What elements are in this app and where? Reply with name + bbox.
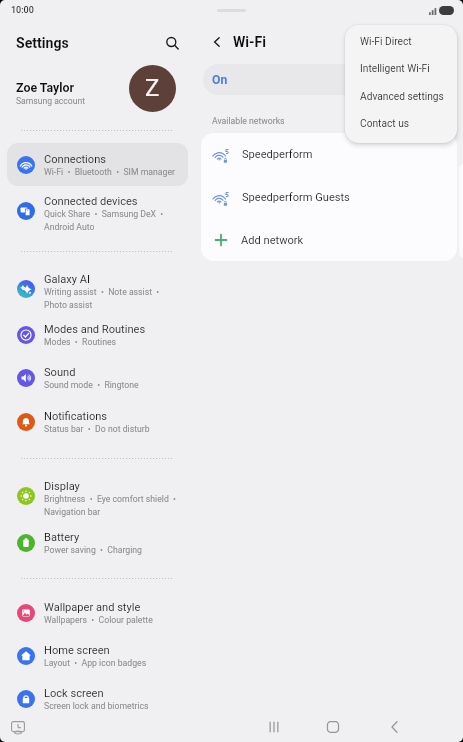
button[interactable]: Notifications — [7, 400, 188, 443]
staticText: Wi-Fi Direct — [360, 36, 412, 48]
staticText: Intelligent Wi-Fi — [360, 63, 430, 75]
button[interactable]: Intelligent Wi-Fi — [345, 55, 457, 82]
button[interactable]: Back — [388, 721, 400, 733]
button[interactable]: Home — [327, 721, 339, 733]
button[interactable]: Add network — [201, 219, 457, 261]
staticText: Wallpaper and style — [44, 601, 141, 614]
button[interactable]: On — [203, 64, 457, 95]
staticText: Display — [44, 480, 80, 493]
button[interactable]: Display — [7, 471, 188, 521]
staticText: Power saving • Charging — [44, 545, 143, 555]
button[interactable]: Wallpaper and style — [7, 591, 188, 634]
staticText: Wi-Fi • Bluetooth • SIM manager — [44, 167, 176, 177]
staticText: On — [212, 73, 228, 87]
staticText: Zoe Taylor — [16, 80, 75, 95]
button[interactable]: Galaxy AI — [7, 264, 188, 314]
staticText: Settings — [16, 35, 69, 52]
button[interactable]: Search — [160, 31, 184, 55]
staticText: Modes • Routines — [44, 337, 117, 347]
staticText: Available networks — [212, 116, 285, 126]
staticText: Quick Share • Samsung DeX • Android Auto — [44, 209, 164, 232]
staticText: Screen lock and biometrics — [44, 701, 149, 711]
button[interactable]: Connections — [7, 143, 188, 186]
button[interactable]: Contact us — [345, 110, 457, 137]
staticText: Status bar • Do not disturb — [44, 424, 150, 434]
button[interactable]: Advanced settings — [345, 83, 457, 110]
button[interactable]: Modes and Routines — [7, 313, 188, 356]
button[interactable]: Back — [206, 31, 228, 53]
staticText: Notifications — [44, 410, 108, 423]
button[interactable]: Connected devices — [7, 186, 188, 236]
staticText: Battery — [44, 531, 80, 544]
button[interactable]: Digital wellbeing — [7, 716, 29, 738]
staticText: Sound — [44, 366, 76, 379]
button[interactable]: Recent apps — [268, 721, 280, 733]
staticText: Add network — [241, 234, 304, 247]
staticText: Home screen — [44, 644, 110, 657]
staticText: Brightness • Eye comfort shield • Naviga… — [44, 494, 177, 517]
staticText: Advanced settings — [360, 91, 444, 103]
staticText: Z — [145, 74, 160, 102]
staticText: 10:00 — [11, 5, 34, 16]
button[interactable]: Zoe Taylor — [0, 62, 190, 114]
button[interactable]: Lock screen — [7, 677, 188, 720]
staticText: Connected devices — [44, 195, 138, 208]
button[interactable]: Battery — [7, 521, 188, 564]
staticText: Connections — [44, 153, 106, 166]
staticText: Speedperform — [242, 148, 313, 161]
staticText: Samsung account — [16, 96, 86, 106]
button[interactable]: Home screen — [7, 634, 188, 677]
staticText: Wi-Fi — [233, 34, 267, 51]
button[interactable]: Speedperform Guests — [201, 176, 457, 219]
staticText: Sound mode • Ringtone — [44, 380, 139, 390]
button[interactable]: Wi-Fi Direct — [345, 28, 457, 55]
staticText: Contact us — [360, 118, 410, 130]
staticText: Wallpapers • Colour palette — [44, 615, 153, 625]
staticText: Layout • App icon badges — [44, 658, 147, 668]
staticText: Galaxy AI — [44, 273, 91, 286]
button[interactable]: Sound — [7, 356, 188, 399]
staticText: Lock screen — [44, 687, 104, 700]
staticText: Modes and Routines — [44, 323, 146, 336]
staticText: Writing assist • Note assist • Photo ass… — [44, 287, 160, 310]
staticText: Speedperform Guests — [242, 191, 350, 204]
button[interactable]: Speedperform — [201, 133, 457, 176]
